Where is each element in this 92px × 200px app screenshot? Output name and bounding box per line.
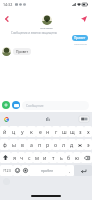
- button[interactable]: р: [44, 139, 52, 150]
- button[interactable]: Привет: [72, 35, 88, 41]
- button[interactable]: [13, 165, 21, 176]
- staticText: ь: [60, 154, 63, 161]
- button[interactable]: Back: [1, 13, 13, 25]
- staticText: Привет: [16, 49, 28, 54]
- button[interactable]: я: [11, 152, 18, 163]
- staticText: е: [39, 128, 42, 135]
- staticText: Привет: [74, 36, 86, 40]
- staticText: й: [3, 128, 7, 135]
- button[interactable]: [0, 152, 11, 163]
- staticText: в: [21, 141, 24, 148]
- staticText: ю: [75, 154, 80, 161]
- button[interactable]: Call: [78, 13, 90, 25]
- button[interactable]: ю: [73, 152, 81, 163]
- staticText: т: [52, 154, 55, 161]
- button[interactable]: Profile: [40, 15, 53, 29]
- button[interactable]: з: [76, 126, 84, 137]
- staticText: г: [55, 128, 58, 135]
- staticText: э: [87, 141, 90, 148]
- button[interactable]: Привет: [13, 48, 31, 55]
- button[interactable]: а: [27, 139, 36, 150]
- button[interactable]: ж: [76, 139, 84, 150]
- staticText: п: [38, 141, 42, 148]
- button[interactable]: ы: [9, 139, 18, 150]
- staticText: Анастасия: [40, 26, 53, 29]
- staticText: у: [21, 128, 24, 135]
- button[interactable]: ?123: [0, 165, 13, 176]
- button[interactable]: ф: [0, 139, 9, 150]
- button[interactable]: п: [36, 139, 44, 150]
- button[interactable]: т: [49, 152, 57, 163]
- staticText: Сообщение: [26, 104, 44, 108]
- button[interactable]: в: [18, 139, 27, 150]
- button[interactable]: щ: [68, 126, 76, 137]
- staticText: пробел: [41, 168, 54, 173]
- staticText: н: [46, 128, 50, 135]
- staticText: ц: [12, 128, 16, 135]
- button[interactable]: ш: [60, 126, 68, 137]
- staticText: ш: [62, 128, 67, 135]
- staticText: л: [62, 141, 66, 148]
- staticText: .: [69, 167, 71, 174]
- staticText: м: [35, 154, 39, 161]
- button[interactable]: к: [27, 126, 36, 137]
- button[interactable]: д: [68, 139, 76, 150]
- button[interactable]: [81, 152, 92, 163]
- staticText: а: [30, 141, 33, 148]
- staticText: ж: [78, 141, 82, 148]
- staticText: ф: [3, 141, 7, 148]
- staticText: с: [28, 154, 31, 161]
- button[interactable]: Attach: [2, 101, 10, 109]
- button[interactable]: Сообщение: [22, 101, 89, 110]
- button[interactable]: л: [60, 139, 68, 150]
- button[interactable]: enter: [74, 165, 92, 176]
- button[interactable]: ч: [18, 152, 25, 163]
- button[interactable]: н: [44, 126, 52, 137]
- button[interactable]: х: [84, 126, 92, 137]
- button[interactable]: [21, 165, 29, 176]
- button[interactable]: ц: [9, 126, 18, 137]
- staticText: ы: [12, 141, 16, 148]
- button[interactable]: б: [65, 152, 73, 163]
- staticText: х: [87, 128, 90, 135]
- button[interactable]: .: [66, 165, 74, 176]
- button[interactable]: г: [52, 126, 60, 137]
- staticText: б: [67, 154, 71, 161]
- button[interactable]: е: [36, 126, 44, 137]
- button[interactable]: пробел: [29, 165, 66, 176]
- staticText: ?123: [3, 168, 11, 173]
- staticText: я: [13, 154, 16, 161]
- staticText: о: [54, 141, 58, 148]
- button[interactable]: о: [52, 139, 60, 150]
- button[interactable]: м: [33, 152, 41, 163]
- staticText: к: [30, 128, 33, 135]
- staticText: Сообщения и звонки защищены: [6, 31, 62, 35]
- button[interactable]: с: [25, 152, 33, 163]
- button[interactable]: ь: [57, 152, 65, 163]
- button[interactable]: Google: [3, 116, 9, 122]
- staticText: Прочитано: [74, 42, 87, 45]
- button[interactable]: у: [18, 126, 27, 137]
- staticText: щ: [70, 128, 75, 135]
- staticText: 14:32: [3, 2, 13, 7]
- button[interactable]: Avatar: [2, 47, 11, 56]
- button[interactable]: и: [41, 152, 49, 163]
- staticText: р: [46, 141, 50, 148]
- staticText: д: [70, 141, 74, 148]
- button[interactable]: й: [0, 126, 9, 137]
- staticText: и: [43, 154, 47, 161]
- button[interactable]: Camera: [12, 101, 20, 109]
- button[interactable]: Stickers: [45, 116, 51, 122]
- staticText: з: [79, 128, 82, 135]
- staticText: ч: [20, 154, 24, 161]
- button[interactable]: Clipboard: [78, 116, 89, 122]
- button[interactable]: э: [84, 139, 92, 150]
